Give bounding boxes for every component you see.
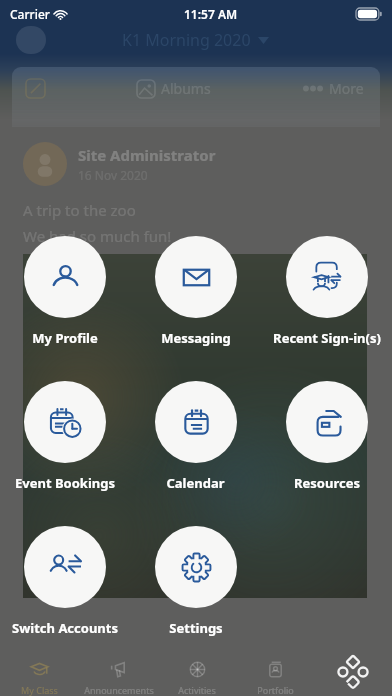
- staticText: 11:57 AM: [184, 6, 238, 22]
- staticText: My Profile: [32, 329, 98, 347]
- staticText: My Class: [21, 684, 58, 696]
- staticText: Calendar: [166, 474, 225, 492]
- button[interactable]: My Profile: [0, 236, 130, 381]
- staticText: Event Bookings: [15, 474, 115, 492]
- staticText: K1 Morning 2020: [122, 29, 251, 51]
- staticText: Resources: [294, 474, 360, 492]
- staticText: Announcements: [84, 684, 154, 696]
- staticText: Carrier: [10, 6, 50, 22]
- staticText: Albums: [161, 79, 211, 98]
- staticText: A trip to the zoo: [23, 200, 136, 220]
- button[interactable]: More: [303, 79, 364, 98]
- button[interactable]: Settings: [130, 526, 261, 671]
- staticText: Site Administrator: [78, 145, 216, 165]
- button[interactable]: School logo: [16, 26, 46, 54]
- staticText: Recent Sign-in(s): [273, 329, 381, 347]
- staticText: Messaging: [161, 329, 231, 347]
- button[interactable]: Portfolio: [236, 648, 314, 696]
- button[interactable]: My Class: [0, 648, 79, 696]
- button[interactable]: Albums: [137, 79, 211, 98]
- button[interactable]: Messaging: [130, 236, 261, 381]
- staticText: We had so much fun!: [23, 226, 172, 246]
- button[interactable]: Announcements: [79, 648, 158, 696]
- button[interactable]: K1 Morning 2020: [122, 29, 269, 51]
- button[interactable]: Activities: [158, 648, 236, 696]
- staticText: Switch Accounts: [12, 619, 118, 637]
- button[interactable]: Recent Sign-in(s): [261, 236, 392, 381]
- staticText: 16 Nov 2020: [78, 167, 148, 183]
- staticText: Settings: [169, 619, 223, 637]
- button[interactable]: Resources: [261, 381, 392, 526]
- staticText: Activities: [178, 684, 216, 696]
- button[interactable]: Create post: [26, 79, 45, 98]
- staticText: More: [329, 79, 364, 98]
- button[interactable]: More: [314, 648, 392, 696]
- button[interactable]: Switch Accounts: [0, 526, 130, 671]
- button[interactable]: Event Bookings: [0, 381, 130, 526]
- button[interactable]: Calendar: [130, 381, 261, 526]
- staticText: Portfolio: [257, 684, 294, 696]
